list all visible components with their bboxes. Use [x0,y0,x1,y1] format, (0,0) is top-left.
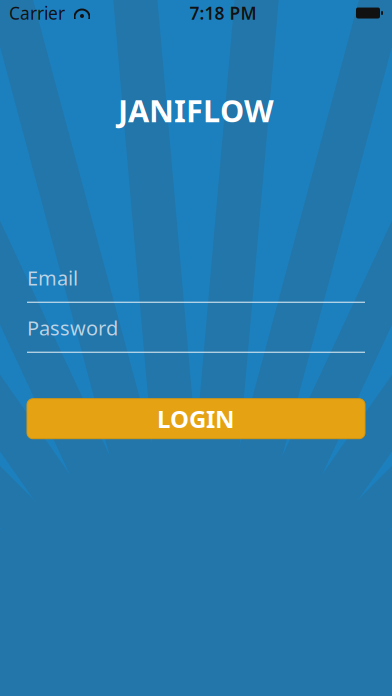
staticText: Password [27,314,118,341]
staticText: LOGIN [157,403,235,435]
button[interactable]: LOGIN [27,399,365,439]
staticText: Carrier [9,1,65,24]
staticText: JANIFLOW [118,90,274,131]
staticText: Email [27,264,78,291]
staticText: 7:18 PM [189,1,256,24]
